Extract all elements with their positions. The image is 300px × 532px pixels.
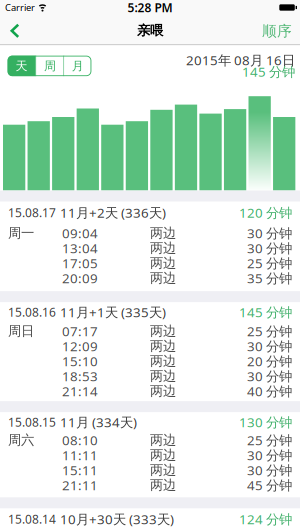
staticText: 11:11 bbox=[62, 446, 98, 464]
staticText: 07:17 bbox=[62, 322, 98, 340]
button[interactable]: 21:14 bbox=[0, 383, 300, 398]
button[interactable]: 12:09 bbox=[0, 338, 300, 353]
staticText: 2015年 08月 16日 bbox=[186, 51, 295, 69]
staticText: 两边 bbox=[150, 353, 176, 369]
staticText: 天 bbox=[16, 58, 28, 73]
button[interactable]: 周 bbox=[36, 56, 63, 76]
staticText: 40 分钟 bbox=[247, 382, 292, 400]
staticText: 30 分钟 bbox=[247, 461, 292, 479]
button[interactable]: 15:11 bbox=[0, 462, 300, 477]
button[interactable]: 周日 bbox=[0, 323, 300, 338]
staticText: 两边 bbox=[150, 240, 176, 256]
staticText: 10月+30天 (333天) bbox=[60, 510, 174, 528]
staticText: 周日 bbox=[8, 323, 34, 339]
staticText: 145 分钟 bbox=[239, 303, 292, 321]
staticText: 21:14 bbox=[62, 382, 98, 400]
staticText: 两边 bbox=[150, 270, 176, 286]
staticText: 两边 bbox=[150, 477, 176, 493]
staticText: 09:04 bbox=[62, 224, 98, 242]
staticText: 20:09 bbox=[62, 269, 98, 287]
staticText: 35 分钟 bbox=[247, 269, 292, 287]
staticText: 13:04 bbox=[62, 239, 98, 257]
staticText: 15.08.14 bbox=[8, 511, 56, 527]
staticText: 30 分钟 bbox=[247, 224, 292, 242]
staticText: 两边 bbox=[150, 462, 176, 478]
staticText: 两边 bbox=[150, 255, 176, 271]
staticText: 两边 bbox=[150, 338, 176, 354]
staticText: 11月+2天 (336天) bbox=[60, 204, 166, 221]
staticText: 两边 bbox=[150, 383, 176, 399]
button[interactable]: 17:05 bbox=[0, 255, 300, 270]
staticText: 15:10 bbox=[62, 352, 98, 370]
button[interactable]: 周六 bbox=[0, 432, 300, 447]
staticText: 30 分钟 bbox=[247, 337, 292, 355]
staticText: 两边 bbox=[150, 323, 176, 339]
staticText: Carrier bbox=[5, 1, 35, 14]
staticText: 亲喂 bbox=[137, 22, 163, 39]
button[interactable]: Back bbox=[2, 17, 28, 45]
button[interactable]: 13:04 bbox=[0, 240, 300, 255]
staticText: 124 分钟 bbox=[239, 510, 292, 528]
staticText: 11月+1天 (335天) bbox=[60, 303, 166, 321]
staticText: 15.08.15 bbox=[8, 414, 56, 430]
staticText: 两边 bbox=[150, 368, 176, 384]
staticText: 30 分钟 bbox=[247, 446, 292, 464]
button[interactable]: 月 bbox=[64, 56, 91, 76]
staticText: 15:11 bbox=[62, 461, 98, 479]
staticText: 15.08.17 bbox=[8, 204, 56, 220]
button[interactable]: 15:10 bbox=[0, 353, 300, 368]
button[interactable]: 周一 bbox=[0, 225, 300, 240]
staticText: 145 分钟 bbox=[242, 63, 295, 80]
staticText: 25 分钟 bbox=[247, 322, 292, 340]
staticText: 两边 bbox=[150, 447, 176, 463]
staticText: 15.08.16 bbox=[8, 304, 56, 320]
staticText: 周 bbox=[44, 58, 56, 73]
staticText: 12:09 bbox=[62, 337, 98, 355]
staticText: 18:53 bbox=[62, 367, 98, 385]
staticText: 120 分钟 bbox=[239, 204, 292, 221]
staticText: 5:28 PM bbox=[127, 0, 172, 15]
staticText: 30 分钟 bbox=[247, 239, 292, 257]
button[interactable]: 天 bbox=[8, 56, 36, 76]
button[interactable]: 18:53 bbox=[0, 368, 300, 383]
staticText: 两边 bbox=[150, 225, 176, 241]
button[interactable]: 20:09 bbox=[0, 270, 300, 285]
staticText: 周六 bbox=[8, 432, 34, 448]
button[interactable]: 11:11 bbox=[0, 447, 300, 462]
staticText: 顺序 bbox=[262, 22, 292, 40]
staticText: 30 分钟 bbox=[247, 367, 292, 385]
staticText: 130 分钟 bbox=[239, 413, 292, 431]
staticText: 两边 bbox=[150, 432, 176, 448]
staticText: 20 分钟 bbox=[247, 352, 292, 370]
staticText: 45 分钟 bbox=[247, 476, 292, 494]
staticText: 08:10 bbox=[62, 431, 98, 449]
button[interactable]: 顺序 bbox=[256, 17, 292, 45]
staticText: 25 分钟 bbox=[247, 431, 292, 449]
staticText: 17:05 bbox=[62, 254, 98, 272]
staticText: 25 分钟 bbox=[247, 254, 292, 272]
staticText: 11月 (334天) bbox=[60, 413, 137, 431]
staticText: 21:11 bbox=[62, 476, 98, 494]
staticText: 周一 bbox=[8, 225, 34, 241]
button[interactable]: 21:11 bbox=[0, 477, 300, 492]
staticText: 月 bbox=[72, 58, 84, 73]
